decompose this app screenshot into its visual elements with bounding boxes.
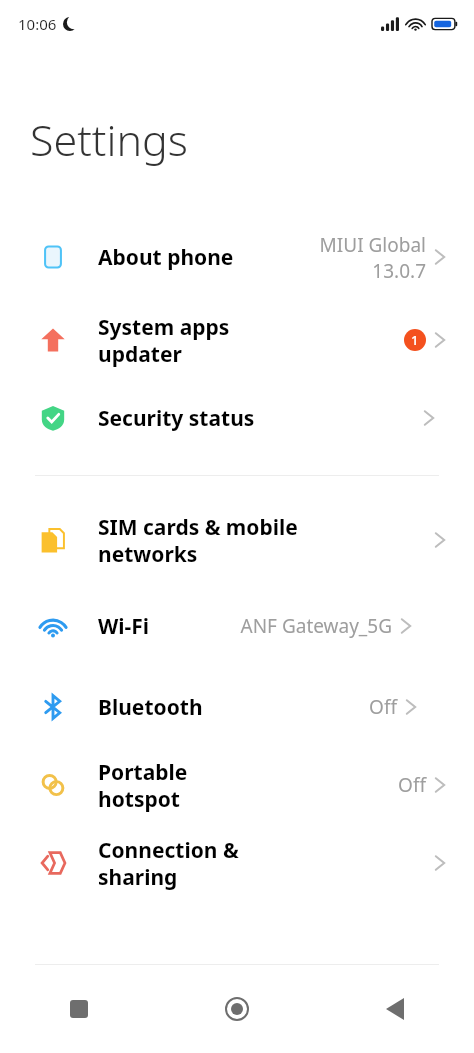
staticText: Wi-Fi — [98, 612, 150, 641]
staticText: System apps updater — [98, 313, 251, 368]
staticText: Off — [369, 694, 397, 720]
button[interactable]: Recents — [0, 965, 158, 1053]
staticText: Bluetooth — [98, 693, 203, 722]
button[interactable]: SIM cards & mobile networks — [0, 496, 474, 584]
button[interactable]: About phone — [0, 213, 474, 301]
staticText: Settings — [30, 110, 188, 169]
button[interactable]: System apps updater — [0, 301, 474, 379]
staticText: 1 — [411, 331, 419, 349]
button[interactable]: Home — [158, 965, 316, 1053]
button[interactable]: Back — [316, 965, 474, 1053]
staticText: MIUI Global 13.0.7 — [296, 232, 426, 283]
staticText: 10:06 — [18, 14, 57, 34]
staticText: Off — [398, 772, 426, 798]
staticText: SIM cards & mobile networks — [98, 513, 358, 568]
staticText: Connection & sharing — [98, 836, 266, 891]
staticText: Security status — [98, 404, 255, 433]
staticText: ANF Gateway_5G — [240, 613, 392, 639]
staticText: Portable hotspot — [98, 758, 232, 813]
staticText: About phone — [98, 243, 234, 272]
button[interactable]: Wi-Fi — [0, 584, 474, 668]
button[interactable]: Portable hotspot — [0, 746, 474, 824]
button[interactable]: Security status — [0, 379, 474, 457]
button[interactable]: Bluetooth — [0, 668, 474, 746]
button[interactable]: Connection & sharing — [0, 824, 474, 902]
